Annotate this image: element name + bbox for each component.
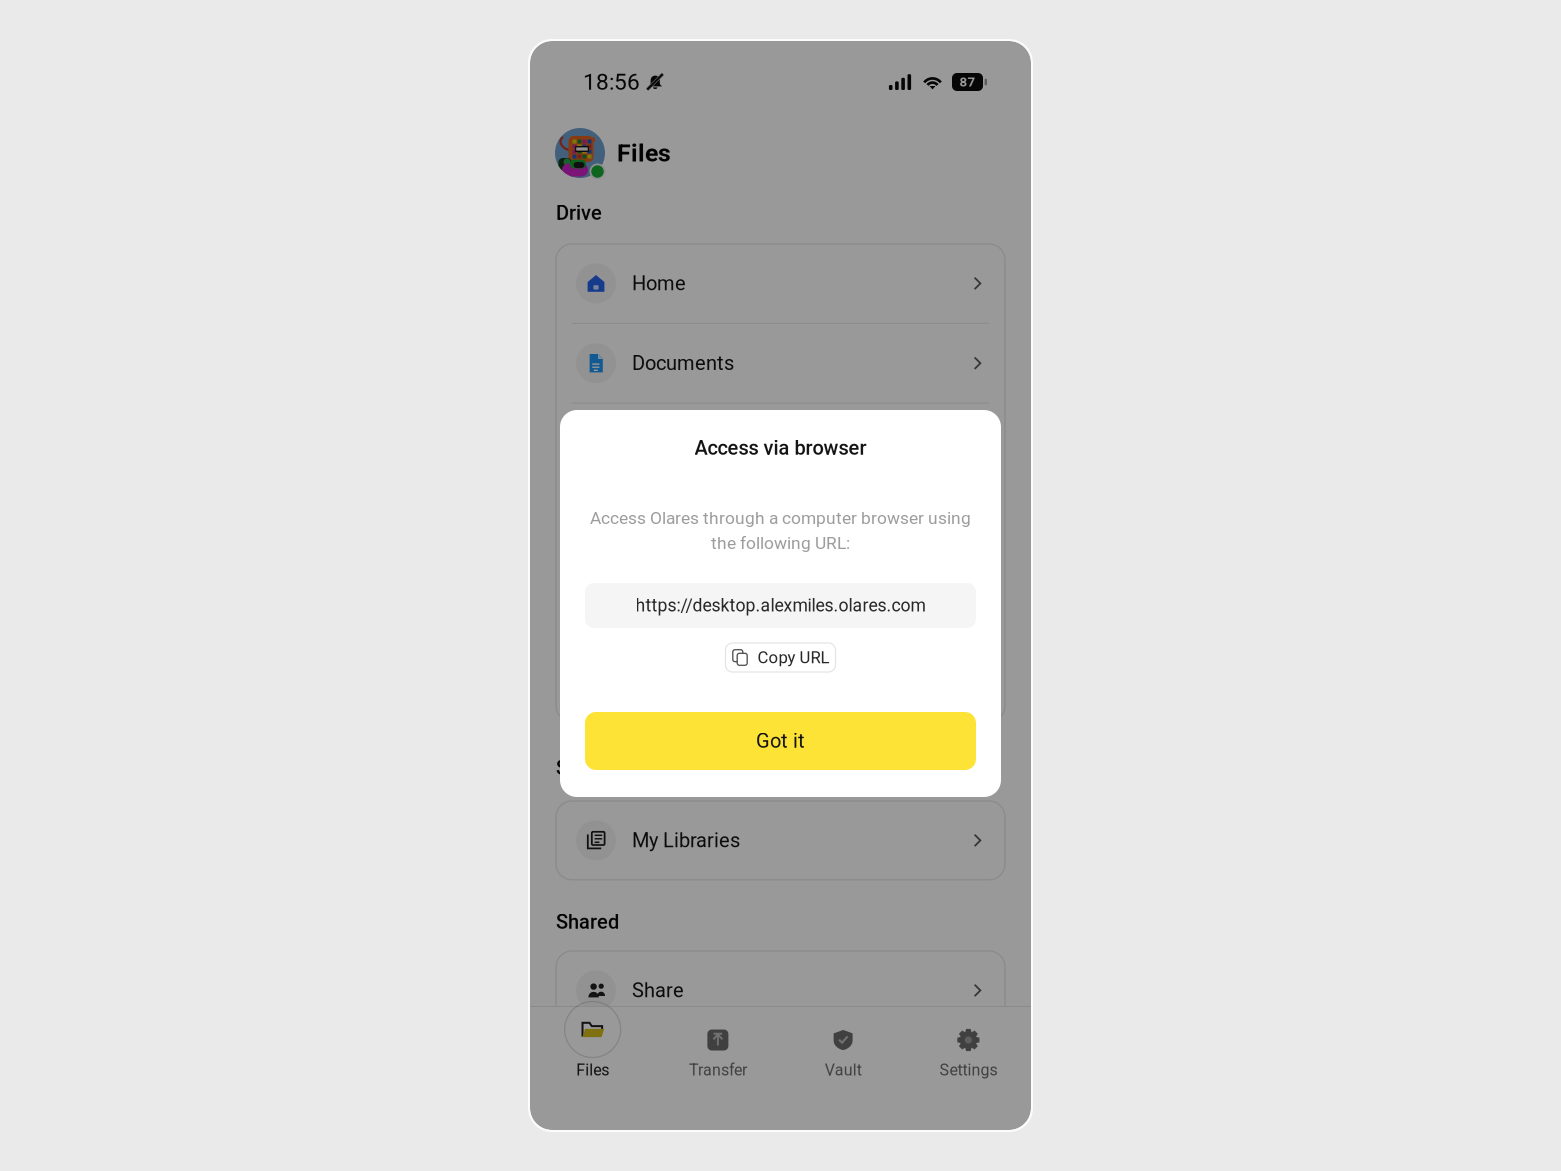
staticText: Files bbox=[576, 1061, 609, 1079]
staticText: Pictures bbox=[632, 431, 706, 455]
button[interactable]: Share bbox=[556, 951, 1005, 1030]
button[interactable]: Account bbox=[555, 128, 605, 178]
staticText: Share bbox=[632, 979, 684, 1002]
staticText: the following URL: bbox=[711, 533, 850, 553]
button[interactable]: Vault bbox=[780, 1006, 906, 1130]
button[interactable]: Videos bbox=[556, 483, 1005, 562]
staticText: Transfer bbox=[689, 1061, 747, 1079]
staticText: Sync bbox=[556, 756, 599, 780]
staticText: Home bbox=[632, 272, 686, 295]
staticText: https://desktop.alexmiles.olares.com bbox=[635, 595, 925, 616]
button[interactable]: Downloads bbox=[556, 643, 1005, 722]
staticText: Videos bbox=[632, 511, 693, 534]
staticText: Copy URL bbox=[757, 648, 829, 667]
staticText: Access via browser bbox=[694, 436, 866, 460]
button[interactable]: Transfer bbox=[655, 1006, 780, 1130]
staticText: Music bbox=[632, 591, 685, 614]
staticText: Access Olares through a computer browser… bbox=[590, 508, 971, 528]
button[interactable]: Files bbox=[530, 1006, 655, 1130]
staticText: Settings bbox=[939, 1061, 997, 1079]
staticText: Files bbox=[617, 138, 671, 167]
staticText: 87 bbox=[959, 74, 975, 90]
button[interactable]: Got it bbox=[585, 712, 976, 770]
staticText: Got it bbox=[756, 729, 805, 753]
staticText: My Libraries bbox=[632, 829, 740, 852]
button[interactable]: Pictures bbox=[556, 404, 1005, 482]
button[interactable]: Home bbox=[556, 244, 1005, 323]
staticText: Vault bbox=[825, 1061, 862, 1079]
staticText: Drive bbox=[556, 201, 602, 225]
button[interactable]: My Libraries bbox=[556, 801, 1005, 880]
staticText: Shared bbox=[556, 910, 619, 934]
staticText: Documents bbox=[632, 351, 734, 375]
button[interactable]: Documents bbox=[556, 324, 1005, 403]
button[interactable]: Copy URL bbox=[725, 643, 835, 672]
staticText: 18:56 bbox=[583, 69, 640, 95]
button[interactable]: Music bbox=[556, 563, 1005, 642]
button[interactable]: Settings bbox=[906, 1006, 1031, 1130]
